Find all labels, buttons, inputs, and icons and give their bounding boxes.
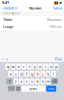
staticText: i	[45, 64, 46, 69]
button[interactable]: o	[49, 63, 53, 69]
button[interactable]: h	[35, 71, 40, 77]
staticText: ‹ Indietro	[2, 5, 17, 11]
staticText: o	[50, 64, 52, 69]
button[interactable]: z	[13, 78, 18, 84]
button[interactable]: u	[38, 63, 42, 69]
staticText: e	[17, 64, 19, 69]
staticText: Riunione	[47, 17, 61, 22]
button[interactable]: e	[16, 63, 21, 69]
button[interactable]: ⇧	[6, 78, 13, 84]
staticText: invio	[48, 87, 55, 90]
button[interactable]: ☺	[16, 86, 21, 92]
button[interactable]: f	[24, 71, 29, 77]
staticText: Ufficio	[49, 24, 61, 29]
button[interactable]: k	[46, 71, 50, 77]
button[interactable]: Previous field	[2, 56, 4, 62]
staticText: f	[26, 71, 27, 76]
button[interactable]: spazio	[21, 86, 45, 92]
button[interactable]: p	[54, 63, 59, 69]
staticText: Salva	[53, 5, 62, 11]
staticText: u	[39, 64, 41, 69]
button[interactable]: y	[32, 63, 37, 69]
button[interactable]: b	[35, 78, 40, 84]
button[interactable]: x	[19, 78, 23, 84]
button[interactable]: q	[5, 63, 10, 69]
staticText: z	[15, 79, 17, 84]
button[interactable]: l	[51, 71, 56, 77]
button[interactable]: i	[43, 63, 48, 69]
staticText: j	[42, 71, 43, 76]
staticText: s	[15, 71, 17, 76]
button[interactable]: g	[30, 71, 34, 77]
staticText: w	[12, 64, 15, 69]
staticText: m	[46, 79, 50, 84]
staticText: n	[42, 79, 44, 84]
button[interactable]: w	[11, 63, 15, 69]
button[interactable]: a	[8, 71, 13, 77]
staticText: Nuovo	[29, 5, 41, 11]
button[interactable]: Titolo	[0, 16, 64, 23]
staticText: h	[36, 71, 38, 76]
button[interactable]: ‹ Indietro	[2, 5, 17, 11]
staticText: ^	[2, 56, 4, 62]
button[interactable]: r	[22, 63, 26, 69]
staticText: g	[31, 71, 33, 76]
staticText: p	[55, 64, 57, 69]
staticText: Fine	[55, 56, 62, 62]
staticText: b	[36, 79, 38, 84]
button[interactable]: ⌫	[51, 78, 58, 84]
staticText: a	[9, 71, 11, 76]
staticText: k	[47, 71, 49, 76]
button[interactable]: Fine	[55, 56, 62, 62]
staticText: ▮▮ ▰	[54, 0, 62, 5]
staticText: ☺	[16, 86, 20, 91]
staticText: Titolo	[3, 17, 12, 22]
button[interactable]: n	[40, 78, 45, 84]
button[interactable]: j	[40, 71, 45, 77]
staticText: Luogo	[3, 24, 13, 29]
staticText: spazio	[29, 87, 37, 90]
staticText: l	[53, 71, 54, 76]
staticText: ⇧	[8, 79, 11, 83]
staticText: t	[29, 64, 30, 69]
button[interactable]: s	[13, 71, 18, 77]
button[interactable]: c	[24, 78, 29, 84]
staticText: y	[34, 64, 36, 69]
staticText: 123	[8, 87, 14, 90]
button[interactable]: invio	[46, 86, 56, 92]
button[interactable]: Luogo	[0, 23, 64, 30]
button[interactable]: d	[19, 71, 23, 77]
button[interactable]: Salva	[53, 5, 62, 11]
staticText: 9:41	[2, 0, 9, 5]
staticText: q	[7, 64, 9, 69]
button[interactable]: Next field	[6, 56, 8, 62]
staticText: v	[31, 79, 33, 84]
button[interactable]: 123	[8, 86, 15, 92]
button[interactable]: m	[46, 78, 50, 84]
staticText: x	[20, 79, 22, 84]
staticText: v	[6, 56, 8, 62]
staticText: Informazioni	[3, 12, 20, 15]
button[interactable]: t	[27, 63, 32, 69]
staticText: d	[20, 71, 22, 76]
staticText: ⌫	[52, 79, 58, 83]
staticText: c	[26, 79, 28, 84]
button[interactable]: v	[30, 78, 34, 84]
staticText: r	[23, 64, 25, 69]
